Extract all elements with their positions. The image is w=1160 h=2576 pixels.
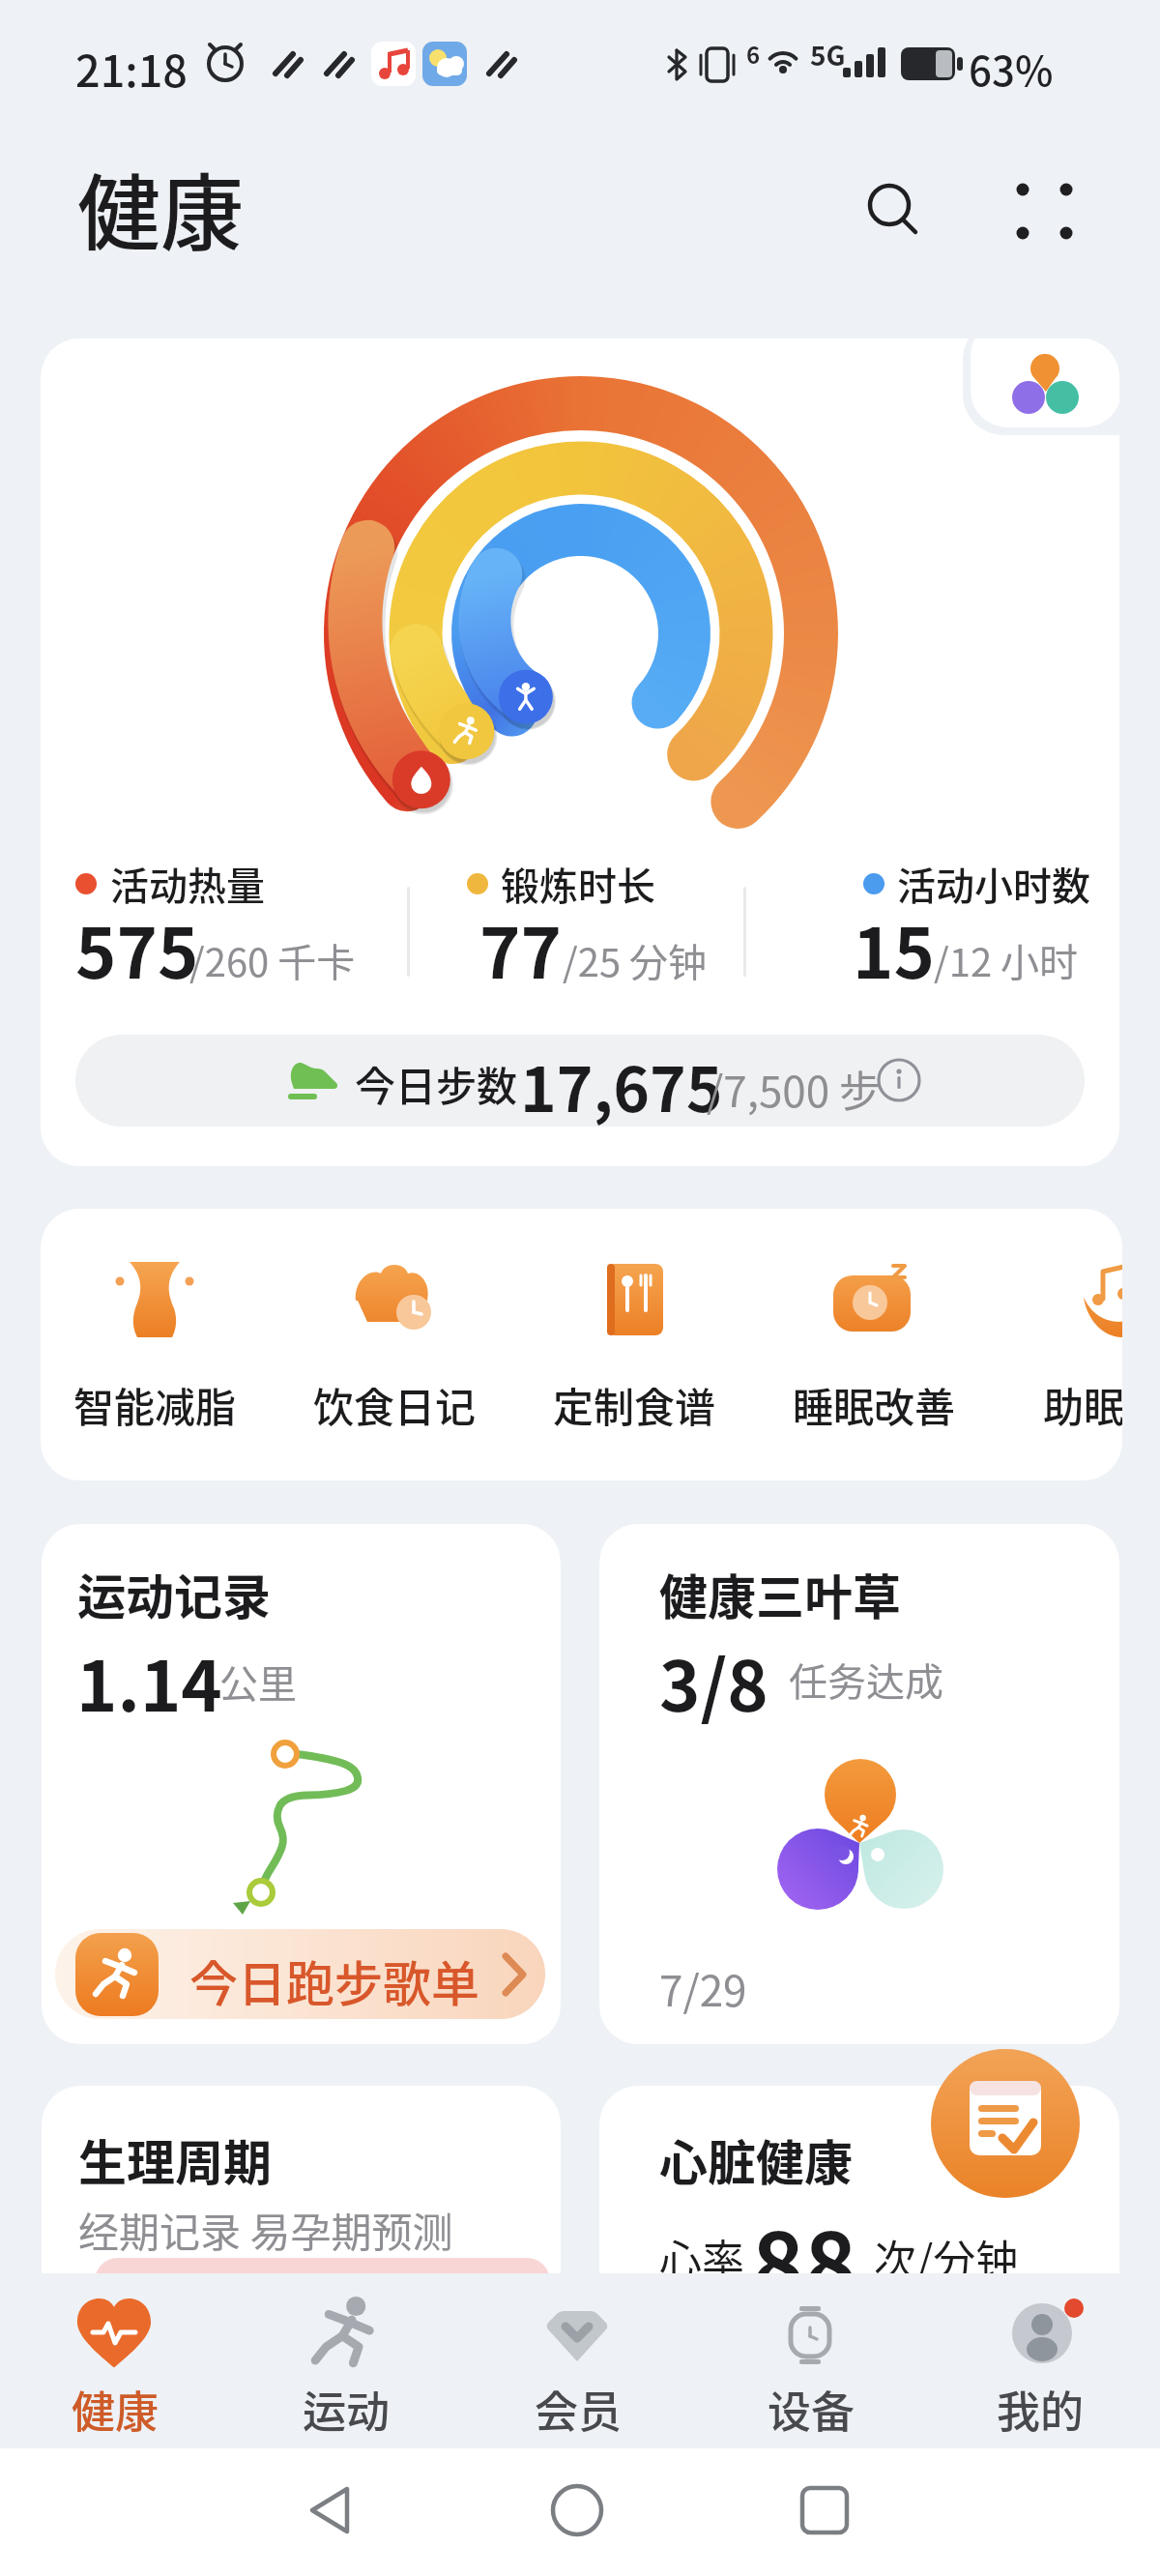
staticText: 今日步数 [355, 1054, 518, 1113]
staticText: 63% [969, 39, 1054, 98]
staticText: 21:18 [75, 37, 188, 100]
button[interactable] [514, 2458, 640, 2566]
button[interactable] [986, 169, 1102, 252]
button[interactable] [723, 2273, 897, 2438]
button[interactable] [762, 2458, 887, 2566]
staticText: 运动 [303, 2378, 391, 2441]
staticText: 7/29 [659, 1957, 747, 2019]
staticText: 5G [810, 35, 846, 74]
staticText: 会员 [535, 2378, 623, 2441]
staticText: 定制食谱 [553, 1375, 716, 1434]
staticText: 1.14 [76, 1630, 222, 1731]
staticText: 睡眠改善 [793, 1375, 956, 1434]
staticText: 任务达成 [789, 1652, 943, 1708]
staticText: 今日跑步歌单 [189, 1946, 479, 2015]
staticText: 饮食日记 [313, 1375, 477, 1434]
button[interactable] [68, 1238, 242, 1450]
button[interactable]: 健康三叶草 [599, 1524, 1119, 2044]
button[interactable] [258, 2273, 432, 2438]
button[interactable] [787, 1238, 961, 1450]
staticText: 智能减脂 [73, 1375, 237, 1434]
button[interactable] [547, 1238, 721, 1450]
staticText: 77 [479, 897, 562, 998]
staticText: 心率 [659, 2227, 744, 2289]
staticText: 健康 [72, 2378, 159, 2441]
staticText: 心脏健康 [659, 2124, 853, 2194]
staticText: 设备 [768, 2378, 855, 2441]
button[interactable] [307, 1238, 481, 1450]
staticText: 经期记录 易孕期预测 [78, 2200, 453, 2259]
staticText: 次/分钟 [874, 2227, 1019, 2289]
button[interactable] [931, 2049, 1080, 2198]
button[interactable] [851, 169, 934, 252]
button[interactable] [1034, 1238, 1122, 1450]
staticText: 助眠 [1043, 1375, 1122, 1434]
staticText: 15 [853, 897, 935, 998]
staticText: 运动记录 [77, 1559, 271, 1628]
staticText: 6 [746, 37, 761, 71]
staticText: /7,500 步 [707, 1058, 883, 1120]
staticText: 公里 [219, 1654, 297, 1710]
staticText: 活动热量 [110, 856, 265, 912]
staticText: 575 [75, 897, 199, 998]
button[interactable]: 心脏健康 [599, 2086, 1119, 2318]
staticText: /260 千卡 [189, 932, 356, 988]
button[interactable]: 活动热量 [41, 338, 1119, 1166]
staticText: 17,675 [520, 1040, 723, 1127]
staticText: 生理周期 [78, 2124, 272, 2194]
staticText: /25 分钟 [563, 932, 708, 988]
staticText: 3/8 [659, 1630, 768, 1731]
button[interactable]: 今日步数 [75, 1035, 1085, 1127]
button[interactable] [490, 2273, 664, 2438]
staticText: 活动小时数 [897, 856, 1090, 912]
staticText: 我的 [997, 2378, 1085, 2441]
button[interactable] [27, 2273, 201, 2438]
button[interactable] [271, 2458, 396, 2566]
button[interactable] [952, 2273, 1126, 2438]
button[interactable]: 生理周期 [42, 2086, 561, 2318]
button[interactable]: 运动记录 [42, 1524, 561, 2044]
button[interactable]: 今日跑步歌单 [55, 1929, 545, 2019]
staticText: 健康 [77, 147, 244, 268]
staticText: 锻炼时长 [501, 856, 655, 912]
staticText: /12 小时 [934, 932, 1079, 988]
staticText: 88 [752, 2194, 857, 2318]
staticText: 健康三叶草 [659, 1559, 901, 1628]
